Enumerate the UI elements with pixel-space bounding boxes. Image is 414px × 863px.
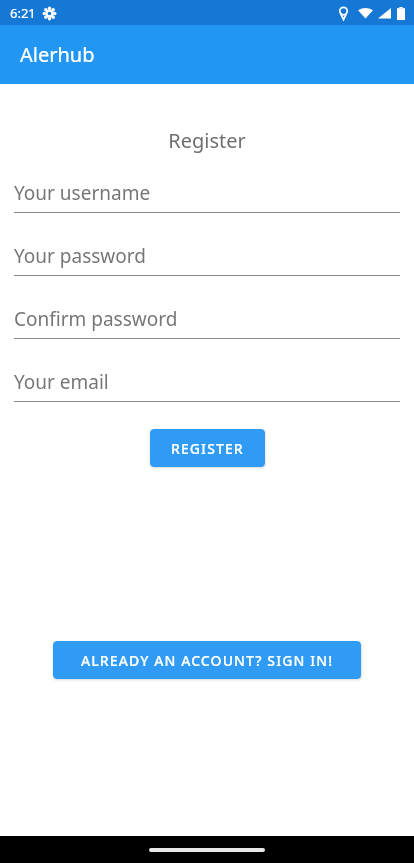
staticText: REGISTER xyxy=(171,439,244,458)
other: Settings xyxy=(43,7,56,20)
button[interactable]: ALREADY AN ACCOUNT? SIGN IN! xyxy=(53,641,361,679)
button[interactable]: Your password xyxy=(14,243,400,276)
staticText: Your email xyxy=(14,369,109,395)
staticText: Your password xyxy=(14,243,146,269)
staticText: Register xyxy=(0,127,414,154)
button[interactable]: REGISTER xyxy=(150,429,265,467)
button[interactable]: Your username xyxy=(14,180,400,213)
staticText: Your username xyxy=(14,180,151,206)
staticText: ALREADY AN ACCOUNT? SIGN IN! xyxy=(81,651,334,670)
button[interactable]: Your email xyxy=(14,369,400,402)
staticText: Confirm password xyxy=(14,306,178,332)
other: Location xyxy=(338,6,349,20)
staticText: Alerhub xyxy=(20,41,95,68)
staticText: 6:21 xyxy=(10,4,36,22)
button[interactable]: Confirm password xyxy=(14,306,400,339)
